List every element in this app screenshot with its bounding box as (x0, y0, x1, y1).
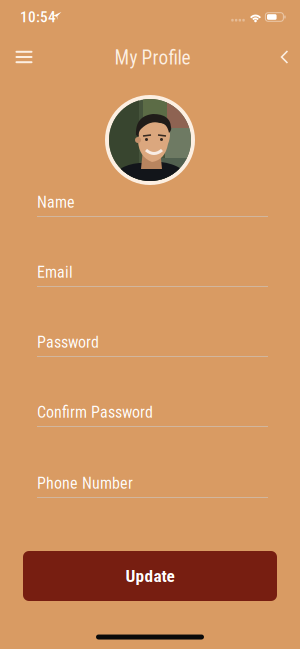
staticText: Update (125, 566, 174, 586)
staticText: My Profile (114, 47, 190, 69)
staticText: Password (37, 333, 99, 352)
staticText: Phone Number (37, 474, 133, 493)
staticText: 10:54 (20, 8, 56, 26)
staticText: Email (37, 263, 73, 282)
staticText: Name (37, 193, 75, 212)
button[interactable]: Update (23, 551, 277, 601)
staticText: Confirm Password (37, 403, 153, 422)
button[interactable]: Back (264, 37, 300, 77)
button[interactable]: Menu (2, 37, 46, 77)
